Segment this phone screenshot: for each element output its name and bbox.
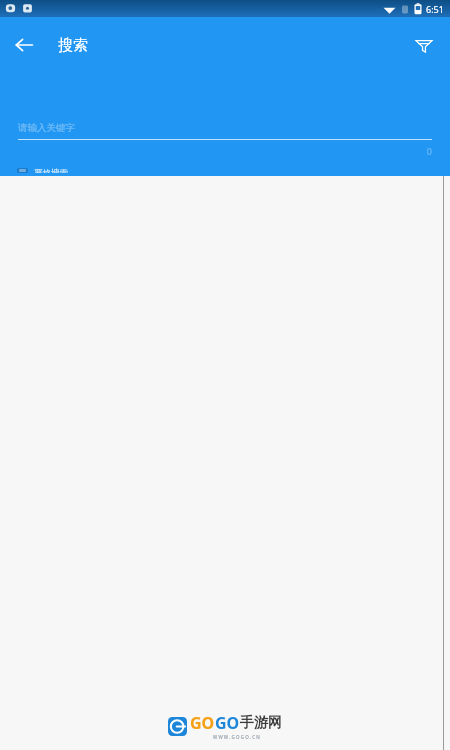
button[interactable]: Filter — [404, 25, 444, 65]
staticText: 手游网 — [240, 714, 282, 732]
staticText: GO — [215, 712, 240, 734]
button[interactable]: 请输入关键字 — [18, 117, 432, 139]
button[interactable]: 严格搜索 — [14, 165, 71, 176]
staticText: 搜索 — [58, 36, 88, 55]
staticText: 严格搜索 — [34, 168, 68, 173]
staticText: 请输入关键字 — [18, 122, 75, 134]
staticText: 6:51 — [426, 3, 444, 15]
staticText: GO — [190, 712, 215, 734]
staticText: W W W . G O G O . C N — [213, 734, 260, 740]
button[interactable]: Back — [4, 25, 44, 65]
staticText: 0 — [426, 145, 432, 157]
